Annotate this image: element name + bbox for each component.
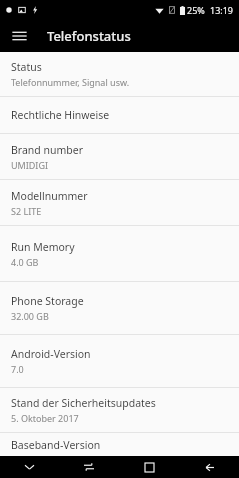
button[interactable]: Modellnummer <box>0 180 239 225</box>
staticText: Telefonstatus <box>47 27 131 45</box>
button[interactable]: Rechtliche Hinweise <box>0 97 239 133</box>
staticText: Brand number <box>11 143 84 157</box>
staticText: 5. Oktober 2017 <box>11 412 79 424</box>
staticText: UMIDIGI <box>11 159 49 171</box>
button[interactable]: Back <box>179 456 239 478</box>
staticText: 25% <box>187 4 205 16</box>
staticText: 4.0 GB <box>11 256 39 268</box>
button[interactable]: Switch input method <box>59 456 119 478</box>
staticText: Stand der Sicherheitsupdates <box>11 396 156 410</box>
button[interactable]: Brand number <box>0 134 239 179</box>
staticText: Baseband-Version <box>11 438 101 452</box>
staticText: Run Memory <box>11 240 75 254</box>
button[interactable]: Stand der Sicherheitsupdates <box>0 388 239 432</box>
button[interactable]: Open navigation menu <box>8 25 30 47</box>
staticText: Status <box>11 60 42 74</box>
button[interactable]: Recent apps <box>119 456 179 478</box>
staticText: Phone Storage <box>11 294 84 308</box>
button[interactable]: Baseband-Version <box>0 433 239 456</box>
staticText: 13:19 <box>210 4 234 16</box>
button[interactable]: Status <box>0 52 239 96</box>
button[interactable]: Android-Version <box>0 335 239 387</box>
staticText: Rechtliche Hinweise <box>11 108 110 122</box>
staticText: 7.0 <box>11 363 24 375</box>
button[interactable]: Phone Storage <box>0 282 239 334</box>
button[interactable]: Run Memory <box>0 226 239 281</box>
staticText: Modellnummer <box>11 189 88 203</box>
staticText: S2 LITE <box>11 205 42 217</box>
button[interactable]: Hide keyboard <box>0 456 59 478</box>
staticText: Android-Version <box>11 347 91 361</box>
staticText: 32.00 GB <box>11 310 49 322</box>
staticText: Telefonnummer, Signal usw. <box>11 76 130 88</box>
